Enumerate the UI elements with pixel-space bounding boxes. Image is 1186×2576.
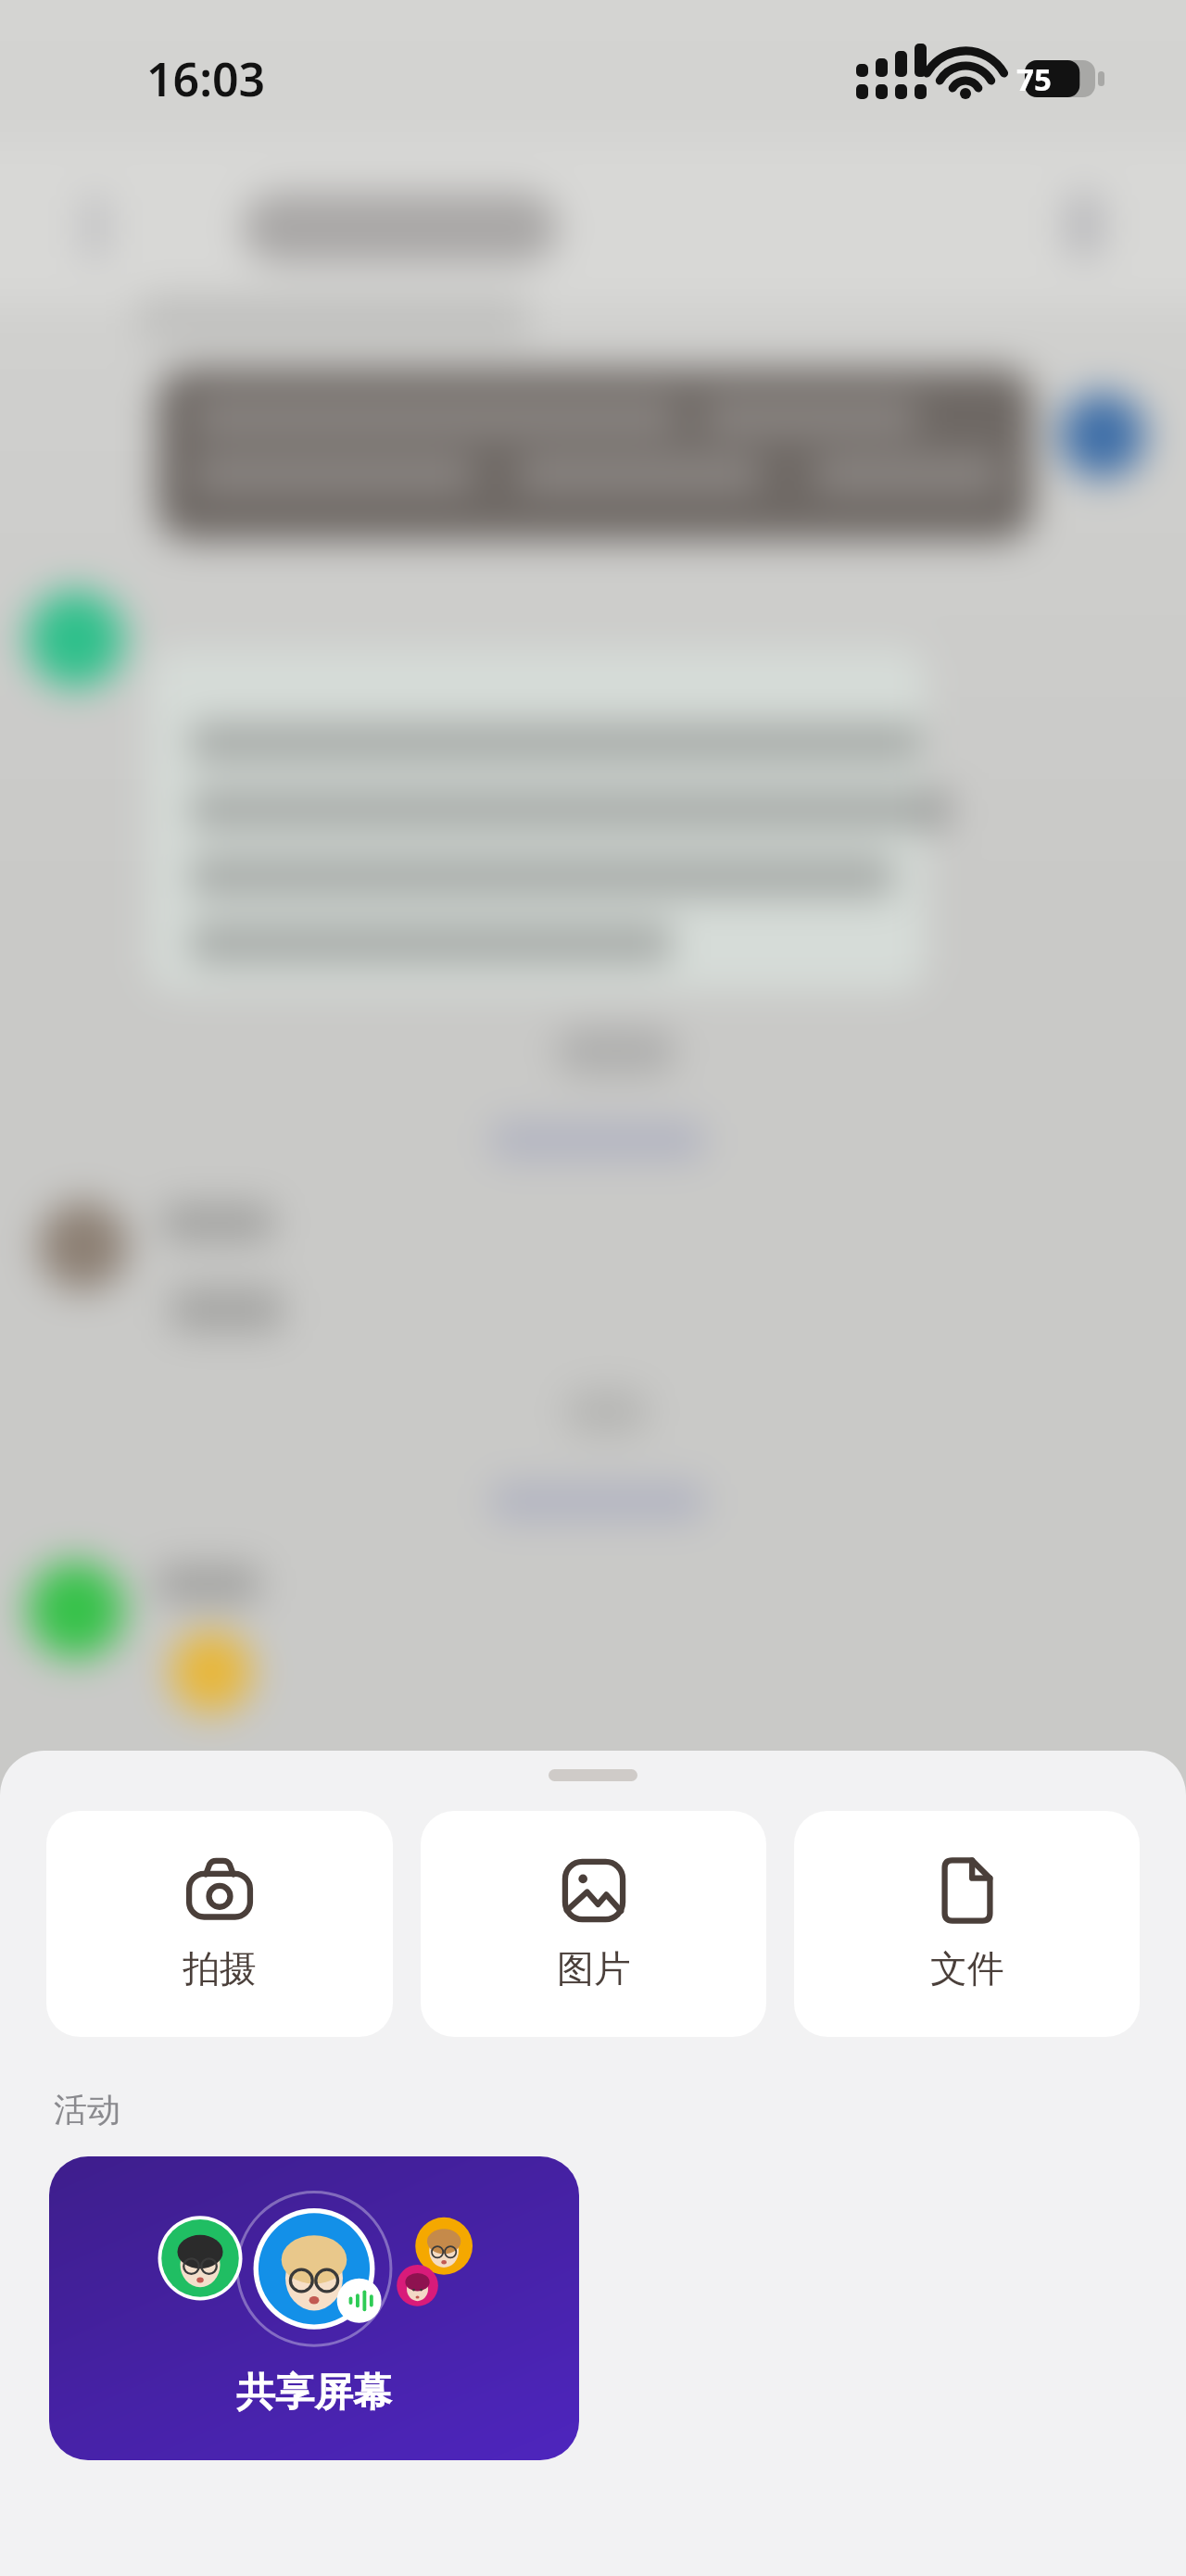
staticText: 共享屏幕 bbox=[236, 2369, 392, 2418]
button[interactable]: 共享屏幕 bbox=[49, 2156, 579, 2460]
button[interactable]: 拍摄 bbox=[46, 1811, 393, 2037]
button[interactable]: 文件 bbox=[794, 1811, 1140, 2037]
staticText: 16:03 bbox=[146, 47, 266, 110]
staticText: 图片 bbox=[557, 1945, 631, 1992]
staticText: 拍摄 bbox=[183, 1945, 257, 1992]
staticText: 文件 bbox=[930, 1945, 1004, 1992]
staticText: 活动 bbox=[54, 2089, 120, 2130]
staticText: 75 bbox=[1016, 58, 1052, 100]
button[interactable]: 图片 bbox=[421, 1811, 766, 2037]
